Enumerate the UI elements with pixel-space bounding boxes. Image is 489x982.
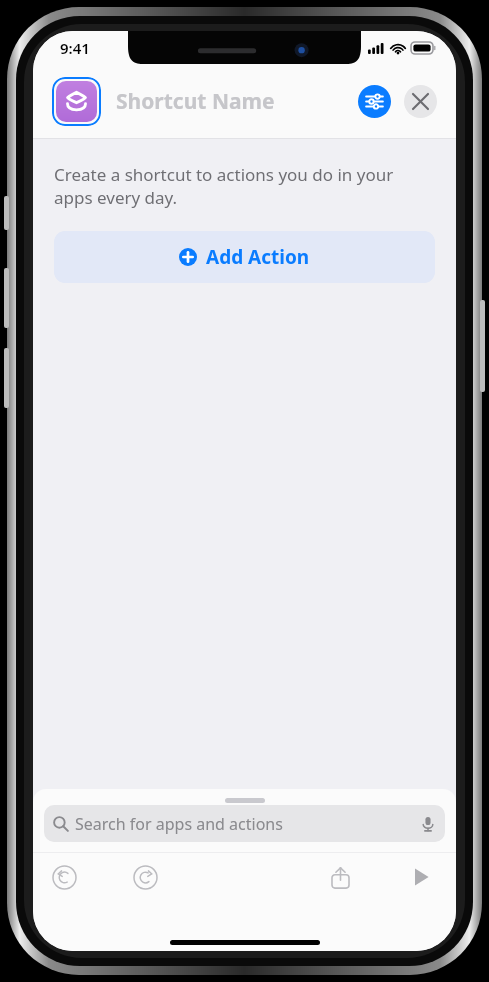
staticText: 9:41 xyxy=(60,38,90,58)
button[interactable]: Run shortcut xyxy=(404,860,438,894)
button[interactable]: Undo xyxy=(47,860,81,894)
staticText: Search for apps and actions xyxy=(75,813,420,835)
button[interactable]: Redo xyxy=(128,860,162,894)
staticText: Shortcut Name xyxy=(116,87,358,116)
button[interactable]: Shortcut settings xyxy=(358,85,391,118)
button[interactable]: Shortcut icon xyxy=(52,77,101,126)
button[interactable]: Share xyxy=(323,860,357,894)
other: Voice search xyxy=(420,816,436,832)
staticText: Create a shortcut to actions you do in y… xyxy=(54,163,435,209)
button[interactable]: Close xyxy=(404,85,437,118)
button[interactable]: Add Action xyxy=(54,231,435,283)
staticText: Add Action xyxy=(206,244,310,270)
button[interactable]: Search for apps and actions xyxy=(44,805,445,842)
